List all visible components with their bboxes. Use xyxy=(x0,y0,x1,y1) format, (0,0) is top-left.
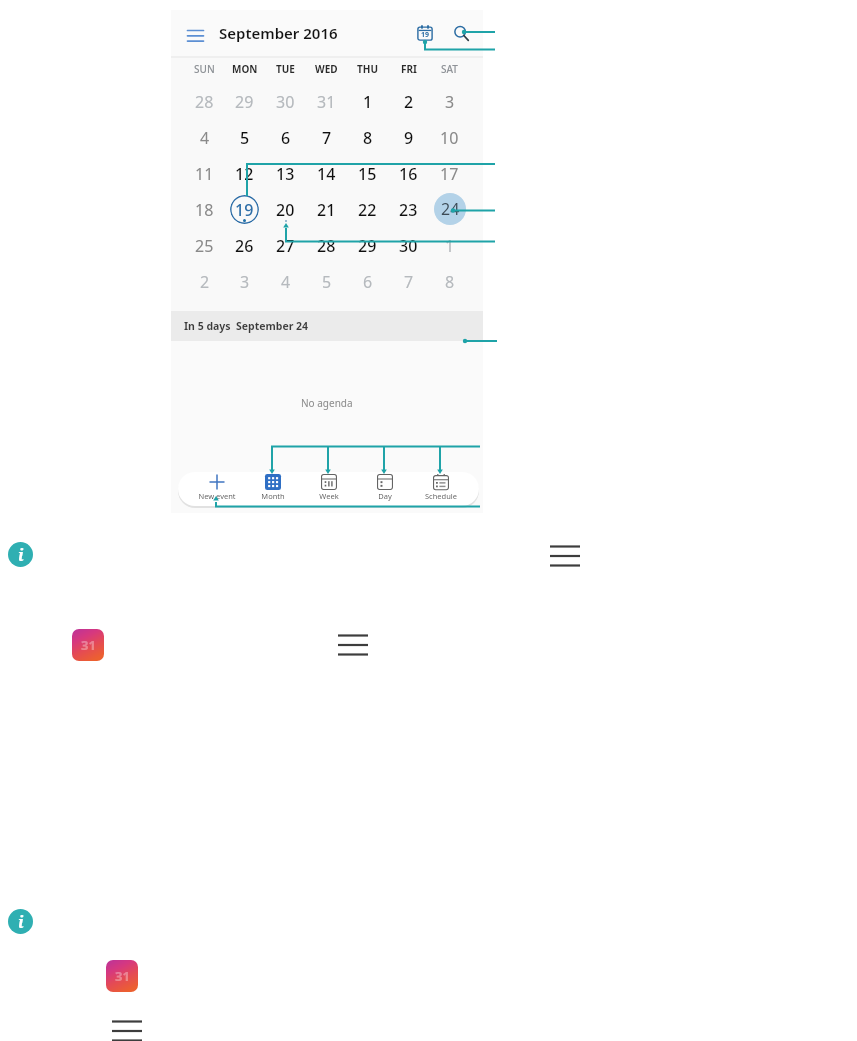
staticText: Schedule xyxy=(425,491,457,501)
button[interactable]: 1 xyxy=(353,87,382,116)
staticText: 1 xyxy=(445,235,455,257)
staticText: 21 xyxy=(317,199,336,221)
staticText: Month xyxy=(261,491,285,501)
button[interactable]: 7 xyxy=(312,123,341,152)
button[interactable]: Calendar app xyxy=(72,629,104,661)
button[interactable]: Menu xyxy=(112,1020,142,1041)
staticText: 25 xyxy=(195,235,214,257)
staticText: 26 xyxy=(235,235,254,257)
button[interactable]: 4 xyxy=(271,267,300,296)
staticText: i xyxy=(18,911,24,933)
staticText: 22 xyxy=(358,199,377,221)
staticText: 4 xyxy=(200,127,210,149)
button[interactable]: 18 xyxy=(190,195,219,224)
button[interactable]: Info xyxy=(8,542,33,567)
button[interactable]: 6 xyxy=(353,267,382,296)
button[interactable]: 30 xyxy=(394,231,423,260)
staticText: THU xyxy=(357,62,378,76)
button[interactable]: Menu xyxy=(338,634,368,660)
button[interactable]: Week xyxy=(301,472,357,503)
button[interactable]: 11 xyxy=(190,159,219,188)
button[interactable]: 30 xyxy=(271,87,300,116)
button[interactable]: 16 xyxy=(394,159,423,188)
staticText: 28 xyxy=(195,91,214,113)
button[interactable]: 9 xyxy=(394,123,423,152)
staticText: 3 xyxy=(445,91,455,113)
staticText: No agenda xyxy=(301,396,353,410)
staticText: 31 xyxy=(115,967,130,985)
button[interactable]: Schedule xyxy=(413,472,469,503)
button[interactable]: 19 xyxy=(230,195,259,224)
staticText: 5 xyxy=(240,127,250,149)
button[interactable]: 5 xyxy=(312,267,341,296)
button[interactable]: 3 xyxy=(230,267,259,296)
staticText: 29 xyxy=(235,91,254,113)
button[interactable]: 22 xyxy=(353,195,382,224)
button[interactable]: 17 xyxy=(435,159,464,188)
staticText: 14 xyxy=(317,163,336,185)
button[interactable]: 4 xyxy=(190,123,219,152)
staticText: 2 xyxy=(404,91,414,113)
button[interactable]: 15 xyxy=(353,159,382,188)
staticText: Week xyxy=(319,491,339,501)
button[interactable]: 21 xyxy=(312,195,341,224)
button[interactable]: 23 xyxy=(394,195,423,224)
button[interactable]: 1 xyxy=(435,231,464,260)
staticText: 19 xyxy=(421,30,430,40)
button[interactable]: 27 xyxy=(271,231,300,260)
button[interactable]: 2 xyxy=(394,87,423,116)
button[interactable]: 29 xyxy=(353,231,382,260)
button[interactable]: 12 xyxy=(230,159,259,188)
button[interactable]: Search xyxy=(449,21,473,45)
button[interactable]: 13 xyxy=(271,159,300,188)
staticText: 10 xyxy=(440,127,459,149)
staticText: 3 xyxy=(240,271,250,293)
button[interactable]: Go to today xyxy=(413,21,437,45)
button[interactable]: 2 xyxy=(190,267,219,296)
button[interactable]: Info xyxy=(8,909,33,934)
button[interactable]: 28 xyxy=(190,87,219,116)
staticText: 2 xyxy=(200,271,210,293)
button[interactable]: Month xyxy=(245,472,301,503)
button[interactable]: 24 xyxy=(434,193,466,225)
button[interactable]: 8 xyxy=(435,267,464,296)
button[interactable]: 6 xyxy=(271,123,300,152)
staticText: MON xyxy=(232,62,258,76)
staticText: WED xyxy=(315,62,338,76)
staticText: 20 xyxy=(276,199,295,221)
button[interactable]: 20 xyxy=(271,195,300,224)
button[interactable]: 8 xyxy=(353,123,382,152)
button[interactable]: Calendar app xyxy=(106,960,138,992)
staticText: 18 xyxy=(195,199,214,221)
button[interactable]: 5 xyxy=(230,123,259,152)
button[interactable]: Day xyxy=(357,472,413,503)
staticText: 30 xyxy=(276,91,295,113)
staticText: 5 xyxy=(322,271,332,293)
button[interactable]: 3 xyxy=(435,87,464,116)
staticText: In 5 days xyxy=(184,319,231,333)
button[interactable]: New event xyxy=(188,472,245,503)
staticText: 24 xyxy=(441,198,460,220)
staticText: 19 xyxy=(235,199,254,221)
button[interactable]: 31 xyxy=(312,87,341,116)
button[interactable]: 25 xyxy=(190,231,219,260)
staticText: FRI xyxy=(401,62,417,76)
button[interactable]: 26 xyxy=(230,231,259,260)
button[interactable]: 10 xyxy=(435,123,464,152)
button[interactable]: Menu xyxy=(184,21,208,45)
button[interactable]: Menu xyxy=(550,545,580,571)
staticText: 11 xyxy=(195,163,214,185)
button[interactable]: 7 xyxy=(394,267,423,296)
button[interactable]: 14 xyxy=(312,159,341,188)
button[interactable]: 29 xyxy=(230,87,259,116)
staticText: 1 xyxy=(363,91,373,113)
button[interactable]: 28 xyxy=(312,231,341,260)
staticText: New event xyxy=(198,491,236,501)
staticText: 31 xyxy=(317,91,336,113)
staticText: 6 xyxy=(363,271,373,293)
staticText: 23 xyxy=(399,199,418,221)
staticText: SAT xyxy=(441,62,458,76)
staticText: 7 xyxy=(404,271,414,293)
staticText: 4 xyxy=(281,271,291,293)
staticText: 8 xyxy=(445,271,455,293)
